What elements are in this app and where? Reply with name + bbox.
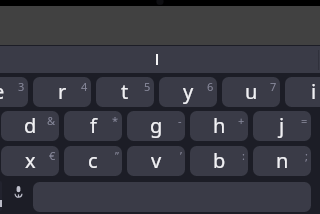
staticText: + [238, 113, 245, 128]
staticText: 3 [18, 79, 25, 94]
button[interactable]: f [64, 111, 122, 141]
staticText: & [47, 113, 56, 128]
button[interactable]: x [1, 146, 59, 176]
staticText: = [301, 113, 308, 128]
staticText: * [112, 113, 119, 128]
button[interactable]: u [222, 77, 280, 107]
staticText: x [25, 147, 36, 174]
staticText: h [213, 112, 226, 139]
button[interactable]: c [64, 146, 122, 176]
staticText: g [150, 112, 163, 139]
button[interactable]: e [0, 77, 28, 107]
button[interactable]: t [96, 77, 154, 107]
staticText: ” [115, 148, 119, 163]
staticText: 7 [270, 79, 277, 94]
button[interactable]: g [127, 111, 185, 141]
button[interactable]: i [285, 77, 320, 107]
staticText: v [151, 147, 162, 174]
staticText: j [279, 112, 285, 139]
button[interactable]: Voice input [6, 181, 30, 211]
staticText: t [121, 78, 129, 105]
staticText: - [178, 113, 182, 128]
button[interactable]: r [33, 77, 91, 107]
button[interactable]: h [190, 111, 248, 141]
staticText: c [88, 147, 98, 174]
staticText: n [276, 147, 289, 174]
button[interactable]: n [253, 146, 311, 176]
button[interactable]: b [190, 146, 248, 176]
button[interactable]: j [253, 111, 311, 141]
staticText: ; [305, 148, 308, 163]
staticText: ’ [180, 148, 182, 163]
button[interactable]: d [1, 111, 59, 141]
button[interactable]: v [127, 146, 185, 176]
staticText: u [245, 78, 258, 105]
staticText: d [24, 112, 37, 139]
button[interactable]: y [159, 77, 217, 107]
staticText: € [49, 148, 56, 163]
staticText: f [90, 112, 97, 139]
staticText: y [183, 78, 194, 105]
staticText: i [311, 78, 317, 105]
staticText: 4 [81, 79, 88, 94]
staticText: e [0, 78, 5, 105]
staticText: 5 [144, 79, 151, 94]
staticText: 6 [207, 79, 214, 94]
staticText: b [213, 147, 226, 174]
staticText: r [58, 78, 67, 105]
staticText: : [242, 148, 245, 163]
